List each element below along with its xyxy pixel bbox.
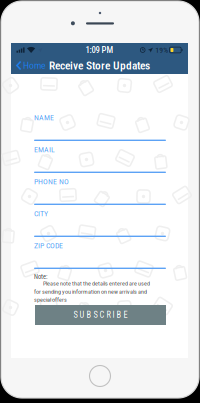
staticText: Receive Store Updates	[49, 59, 150, 72]
staticText: S U B S C R I B E	[73, 310, 127, 320]
staticText: PHONE NO	[34, 177, 69, 186]
staticText: Note:	[34, 273, 47, 280]
staticText: Home	[23, 60, 46, 71]
button[interactable]: S U B S C R I B E	[35, 305, 166, 325]
staticText: CITY	[34, 209, 48, 218]
staticText: 19%	[155, 45, 168, 55]
staticText: ZIP CODE	[34, 241, 63, 250]
staticText: 1:09 PM	[85, 45, 113, 55]
staticText: Please note that the details entered are…	[34, 280, 150, 303]
staticText: NAME	[34, 113, 54, 122]
button[interactable]: Home	[14, 58, 48, 72]
staticText: EMAIL	[34, 145, 55, 154]
